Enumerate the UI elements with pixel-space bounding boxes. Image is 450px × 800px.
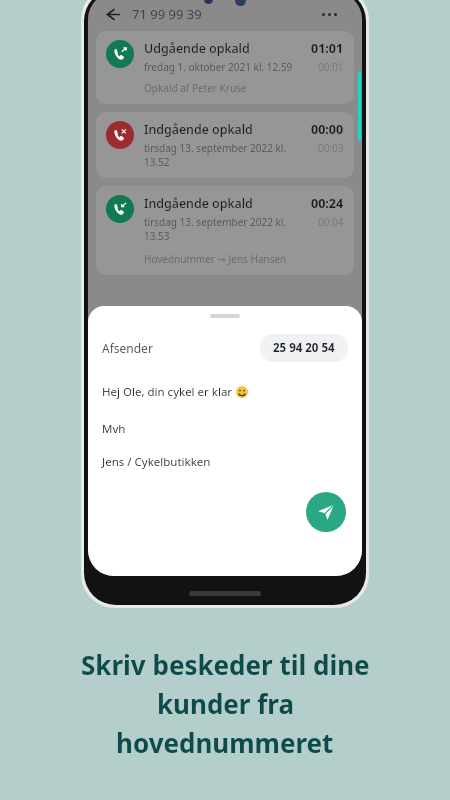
staticText: 00:00 [311, 121, 344, 138]
staticText: 00:04 [318, 215, 344, 229]
staticText: Afsender [102, 340, 153, 356]
staticText: 00:24 [311, 195, 344, 212]
staticText: 71 99 99 39 [132, 5, 202, 23]
button[interactable]: Udgående opkald [96, 31, 354, 104]
staticText: Mvh [102, 421, 126, 437]
staticText: 01:01 [311, 40, 344, 57]
staticText: Indgående opkald [144, 195, 253, 212]
staticText: tirsdag 13. september 2022 kl. 13.52 [144, 141, 312, 169]
button[interactable]: Indgående opkald [96, 112, 354, 178]
button[interactable]: Indgående opkald [96, 186, 354, 275]
staticText: tirsdag 13. september 2022 kl. 13.53 [144, 215, 312, 243]
staticText: kunder fra [157, 686, 294, 721]
staticText: Skriv beskeder til dine [81, 647, 370, 682]
staticText: Udgående opkald [144, 40, 250, 57]
staticText: Opkald af Peter Kruse [144, 81, 247, 95]
staticText: 25 94 20 54 [273, 340, 335, 356]
staticText: Hovednummer → Jens Hansen [144, 252, 287, 266]
staticText: fredag 1. oktober 2021 kl. 12.59 [144, 60, 293, 74]
staticText: Jens / Cykelbutikken [102, 454, 211, 470]
staticText: 00:03 [318, 141, 344, 155]
button[interactable]: Send [306, 492, 346, 532]
staticText: Hej Ole, din cykel er klar [102, 384, 236, 400]
staticText: hovednummeret [116, 725, 334, 760]
staticText: 00:01 [318, 60, 344, 74]
staticText: Indgående opkald [144, 121, 253, 138]
button[interactable]: Tilbage [98, 0, 126, 28]
button[interactable]: Mere [322, 0, 352, 28]
button[interactable]: 25 94 20 54 [260, 334, 348, 362]
